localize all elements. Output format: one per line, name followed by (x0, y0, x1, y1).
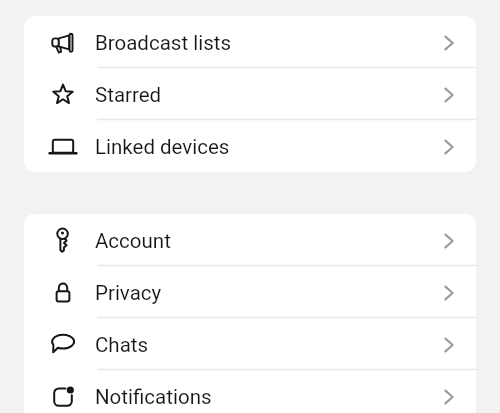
button[interactable]: Broadcast lists (24, 16, 476, 68)
button[interactable]: Notifications (24, 370, 476, 413)
staticText: Account (95, 229, 171, 253)
button[interactable]: Linked devices (24, 120, 476, 172)
staticText: Broadcast lists (95, 31, 232, 55)
staticText: Notifications (95, 385, 212, 409)
button[interactable]: Account (24, 214, 476, 266)
button[interactable]: Privacy (24, 266, 476, 318)
staticText: Linked devices (95, 135, 230, 159)
button[interactable]: Starred (24, 68, 476, 120)
staticText: Starred (95, 83, 162, 107)
button[interactable]: Chats (24, 318, 476, 370)
staticText: Chats (95, 333, 149, 357)
staticText: Privacy (95, 281, 162, 305)
